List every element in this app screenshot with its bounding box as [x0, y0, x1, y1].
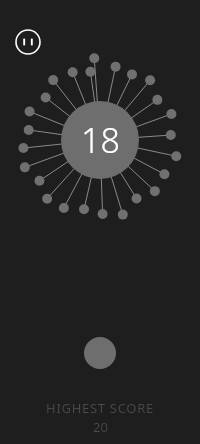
staticText: 18 [81, 117, 120, 163]
button[interactable]: Pause [15, 29, 41, 55]
staticText: HIGHEST SCORE [46, 399, 154, 417]
staticText: 20 [93, 418, 108, 436]
